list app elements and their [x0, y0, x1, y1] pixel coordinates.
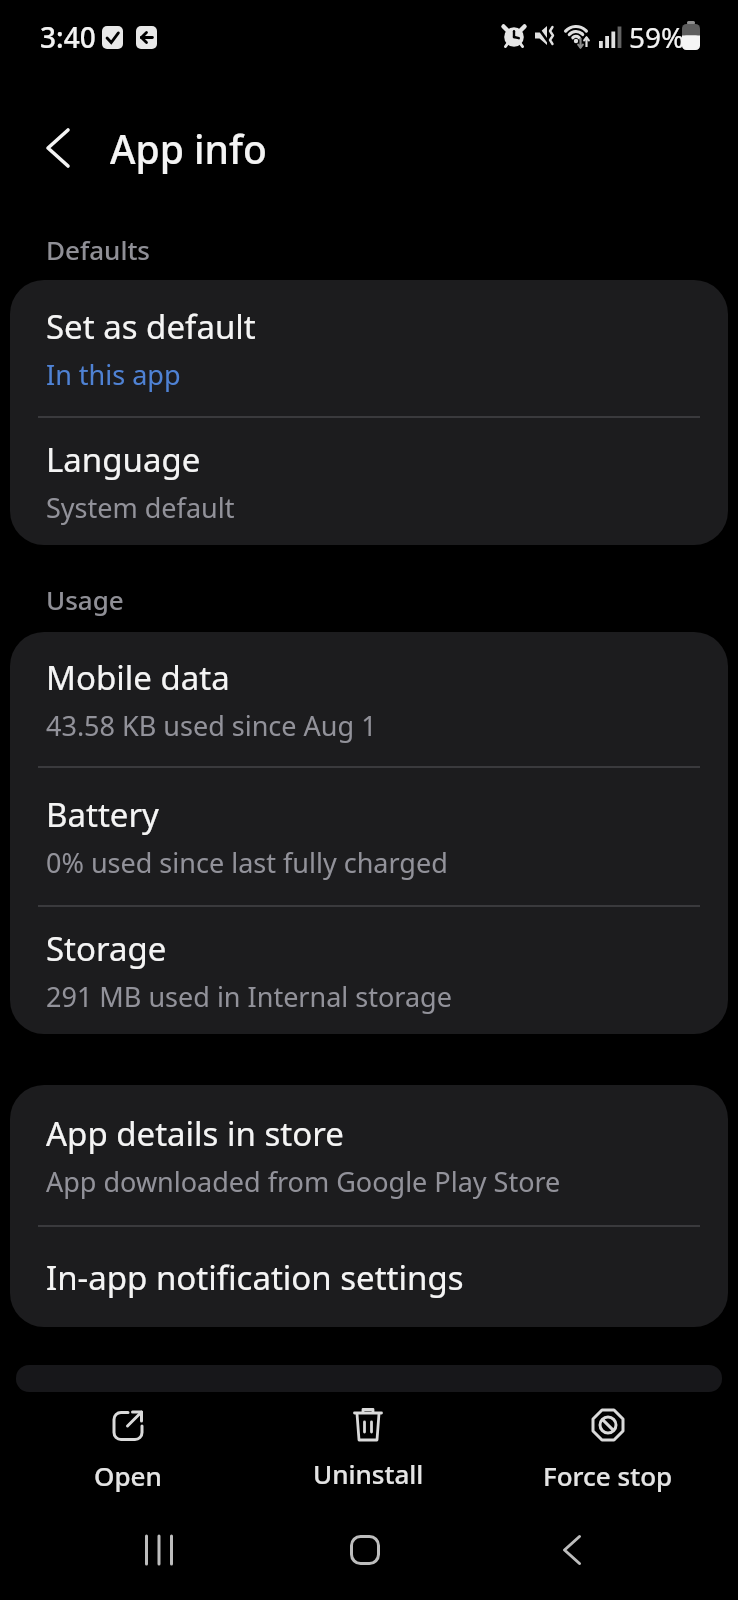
staticText: App details in store: [46, 1111, 344, 1156]
button[interactable]: App details in store: [10, 1085, 728, 1225]
staticText: Force stop: [543, 1458, 673, 1493]
button[interactable]: Uninstall: [288, 1398, 448, 1498]
button[interactable]: Open: [48, 1398, 208, 1498]
staticText: Uninstall: [313, 1456, 424, 1491]
button[interactable]: [119, 1520, 199, 1580]
button[interactable]: In-app notification settings: [10, 1227, 728, 1327]
button[interactable]: [26, 112, 90, 184]
button[interactable]: [532, 1520, 612, 1580]
button[interactable]: Force stop: [528, 1398, 688, 1498]
staticText: App info: [110, 122, 267, 175]
staticText: App downloaded from Google Play Store: [46, 1163, 561, 1200]
staticText: 59%: [629, 18, 685, 56]
staticText: 291 MB used in Internal storage: [46, 978, 452, 1015]
staticText: In-app notification settings: [46, 1255, 464, 1300]
staticText: 43.58 KB used since Aug 1: [46, 707, 377, 744]
button[interactable]: Language: [10, 418, 728, 545]
button[interactable]: Mobile data: [10, 632, 728, 766]
button[interactable]: Set as default: [10, 280, 728, 416]
staticText: In this app: [46, 356, 181, 393]
staticText: Language: [46, 437, 201, 482]
staticText: Storage: [46, 926, 167, 971]
staticText: Battery: [46, 792, 159, 837]
button[interactable]: Battery: [10, 768, 728, 905]
staticText: Usage: [46, 582, 124, 617]
staticText: Open: [94, 1458, 162, 1493]
staticText: Defaults: [46, 232, 151, 267]
staticText: 0% used since last fully charged: [46, 844, 448, 881]
staticText: System default: [46, 489, 235, 526]
button[interactable]: Storage: [10, 907, 728, 1034]
button[interactable]: [325, 1520, 405, 1580]
staticText: 3:40: [40, 18, 96, 56]
staticText: Set as default: [46, 304, 256, 349]
staticText: Mobile data: [46, 655, 230, 700]
